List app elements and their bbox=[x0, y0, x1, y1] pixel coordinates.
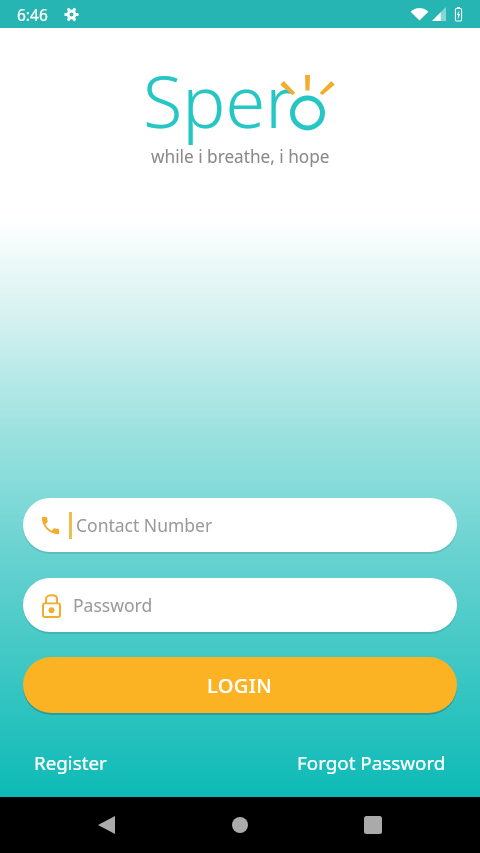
staticText: Sper bbox=[143, 51, 294, 146]
button[interactable]: LOGIN bbox=[23, 657, 457, 713]
staticText: Register bbox=[34, 750, 107, 776]
staticText: 6:46 bbox=[17, 4, 48, 25]
button[interactable]: Password bbox=[23, 578, 457, 632]
button[interactable]: Back bbox=[86, 805, 126, 845]
staticText: Contact Number bbox=[76, 513, 213, 537]
button[interactable]: Forgot Password bbox=[297, 750, 446, 776]
button[interactable]: Recent apps bbox=[353, 805, 393, 845]
button[interactable]: Register bbox=[34, 750, 107, 776]
staticText: while i breathe, i hope bbox=[151, 145, 330, 168]
staticText: Forgot Password bbox=[297, 750, 446, 776]
staticText: LOGIN bbox=[207, 672, 273, 699]
button[interactable]: Home bbox=[220, 805, 260, 845]
staticText: Password bbox=[73, 593, 153, 617]
button[interactable]: Contact Number bbox=[23, 498, 457, 552]
